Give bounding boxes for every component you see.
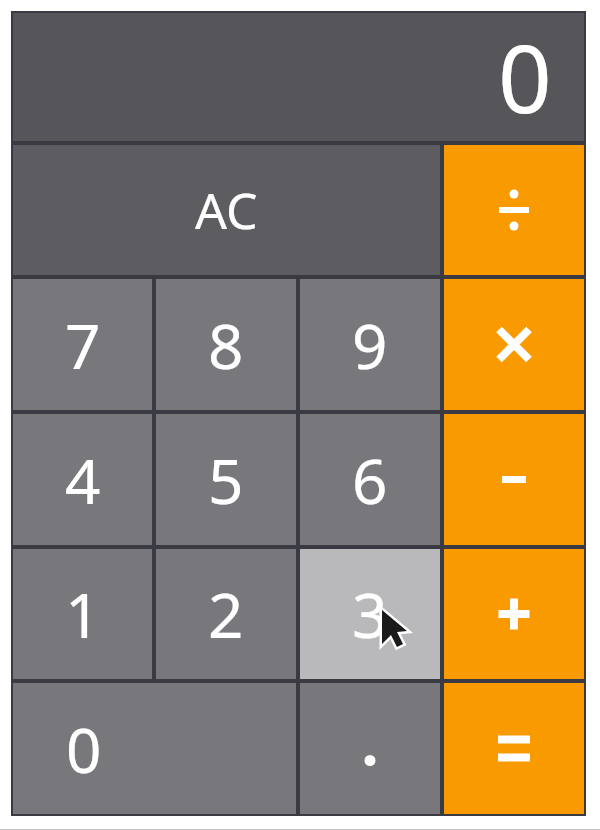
button[interactable]: 1 xyxy=(13,549,152,679)
button[interactable]: Multiply xyxy=(444,279,584,410)
button[interactable]: 2 xyxy=(156,549,296,679)
button[interactable]: 3 xyxy=(300,549,440,679)
staticText: AC xyxy=(195,176,258,244)
staticText: 0 xyxy=(498,13,552,141)
button[interactable]: 5 xyxy=(156,414,296,545)
button[interactable]: 8 xyxy=(156,279,296,410)
button[interactable]: 6 xyxy=(300,414,440,545)
button[interactable]: Equals xyxy=(444,683,584,814)
button[interactable]: 9 xyxy=(300,279,440,410)
staticText: 9 xyxy=(352,303,388,387)
staticText: 7 xyxy=(65,303,101,387)
button[interactable]: Add xyxy=(444,549,584,679)
button[interactable]: Decimal point xyxy=(300,683,440,814)
staticText: 5 xyxy=(208,438,244,522)
button[interactable]: 7 xyxy=(13,279,152,410)
staticText: 3 xyxy=(352,572,388,656)
staticText: 0 xyxy=(66,707,102,791)
staticText: 1 xyxy=(65,572,101,656)
staticText: 6 xyxy=(352,438,388,522)
button[interactable]: AC xyxy=(13,145,440,275)
button[interactable]: 0 xyxy=(13,683,296,814)
button[interactable]: 4 xyxy=(13,414,152,545)
staticText: 2 xyxy=(208,572,244,656)
button[interactable]: Subtract xyxy=(444,414,584,545)
button[interactable]: Divide xyxy=(444,145,584,275)
staticText: 4 xyxy=(65,438,101,522)
staticText: 8 xyxy=(208,303,244,387)
